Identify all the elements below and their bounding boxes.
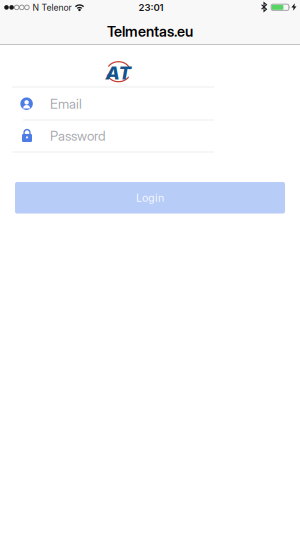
staticText: Login: [136, 191, 164, 204]
staticText: Email: [50, 96, 82, 112]
staticText: AT: [105, 61, 131, 84]
staticText: 23:01: [138, 2, 163, 13]
button[interactable]: Login: [15, 182, 285, 213]
staticText: Telmentas.eu: [107, 23, 193, 40]
staticText: Password: [50, 128, 106, 144]
button[interactable]: Email: [12, 87, 214, 119]
button[interactable]: Password: [12, 120, 214, 152]
staticText: N Telenor: [32, 2, 71, 13]
